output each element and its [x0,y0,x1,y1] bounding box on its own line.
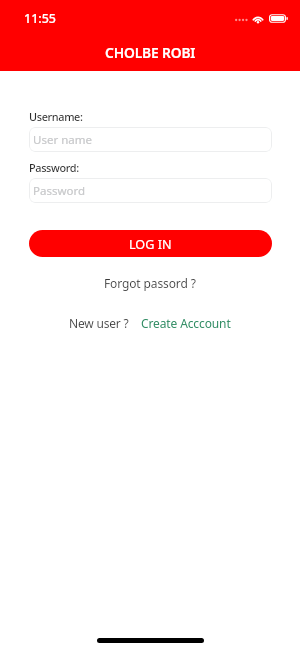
other: Battery full [269,14,288,23]
staticText: Forgot passord ? [104,275,196,291]
button[interactable]: LOG IN [29,230,272,257]
staticText: 11:55 [24,10,57,27]
staticText: Username: [29,109,83,124]
button[interactable]: User name [29,127,272,152]
staticText: LOG IN [129,236,172,253]
other: Wi-Fi [252,14,264,23]
staticText: New user ? [69,315,129,331]
button[interactable]: Password [29,178,272,203]
other: Mobile signal [235,15,247,23]
button[interactable]: Forgot passord ? [98,272,202,294]
button[interactable]: Create Acccount [141,315,231,331]
staticText: Password [33,183,86,199]
staticText: User name [33,132,92,148]
staticText: Create Acccount [141,315,231,331]
staticText: Password: [29,160,79,175]
staticText: CHOLBE ROBI [105,43,196,62]
